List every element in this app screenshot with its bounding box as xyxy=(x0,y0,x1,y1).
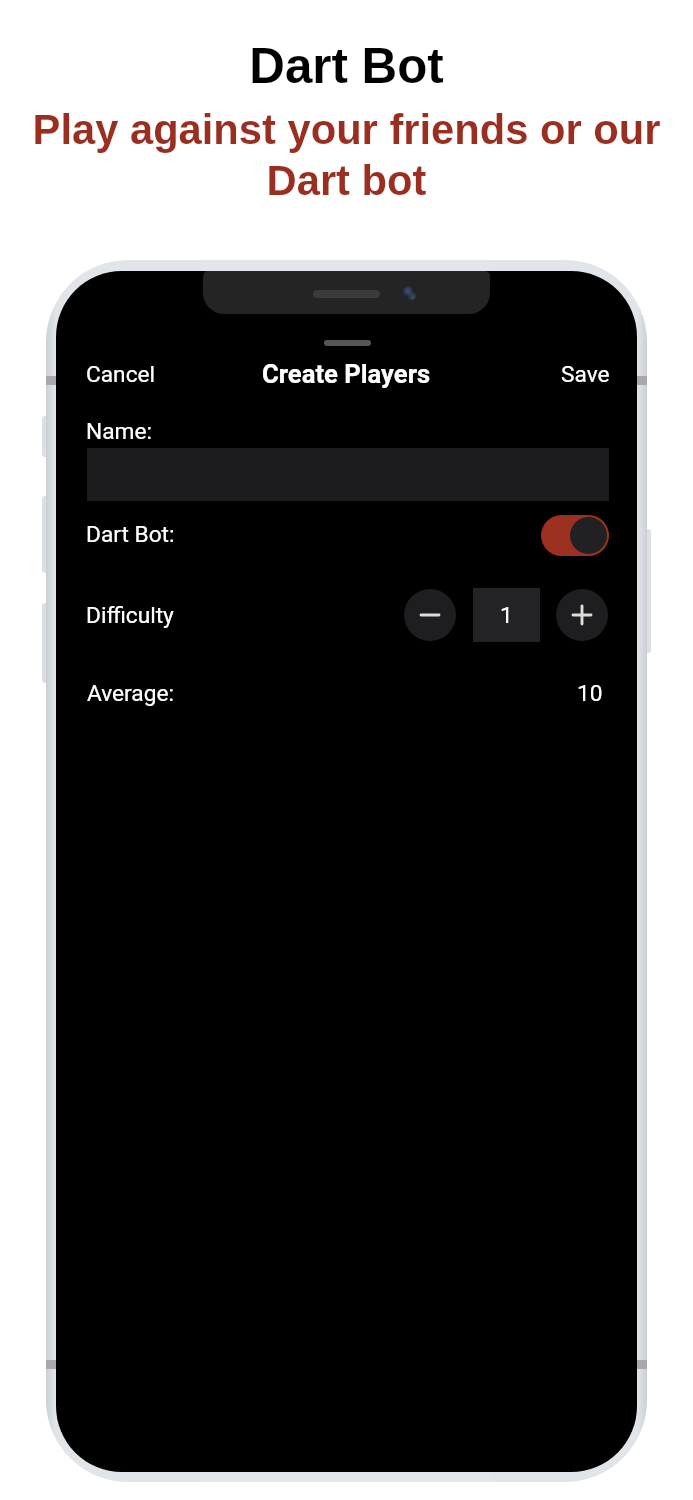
staticText: 1 xyxy=(500,602,513,629)
staticText: Name: xyxy=(86,418,152,445)
button[interactable]: Save xyxy=(546,353,625,395)
button[interactable]: Cancel xyxy=(70,353,172,395)
staticText: Play against your friends or our Dart bo… xyxy=(14,106,679,204)
staticText: Create Players xyxy=(262,359,431,389)
button[interactable]: Dart Bot switch, on xyxy=(541,515,609,556)
button[interactable]: Decrease difficulty xyxy=(404,589,456,641)
staticText: Save xyxy=(561,361,610,387)
staticText: Difficulty xyxy=(86,602,174,629)
staticText: 10 xyxy=(577,680,603,707)
staticText: Cancel xyxy=(86,361,156,387)
staticText: Dart Bot: xyxy=(86,521,175,548)
staticText: Average: xyxy=(87,680,174,707)
button[interactable]: Increase difficulty xyxy=(556,589,608,641)
staticText: Dart Bot xyxy=(0,38,693,93)
